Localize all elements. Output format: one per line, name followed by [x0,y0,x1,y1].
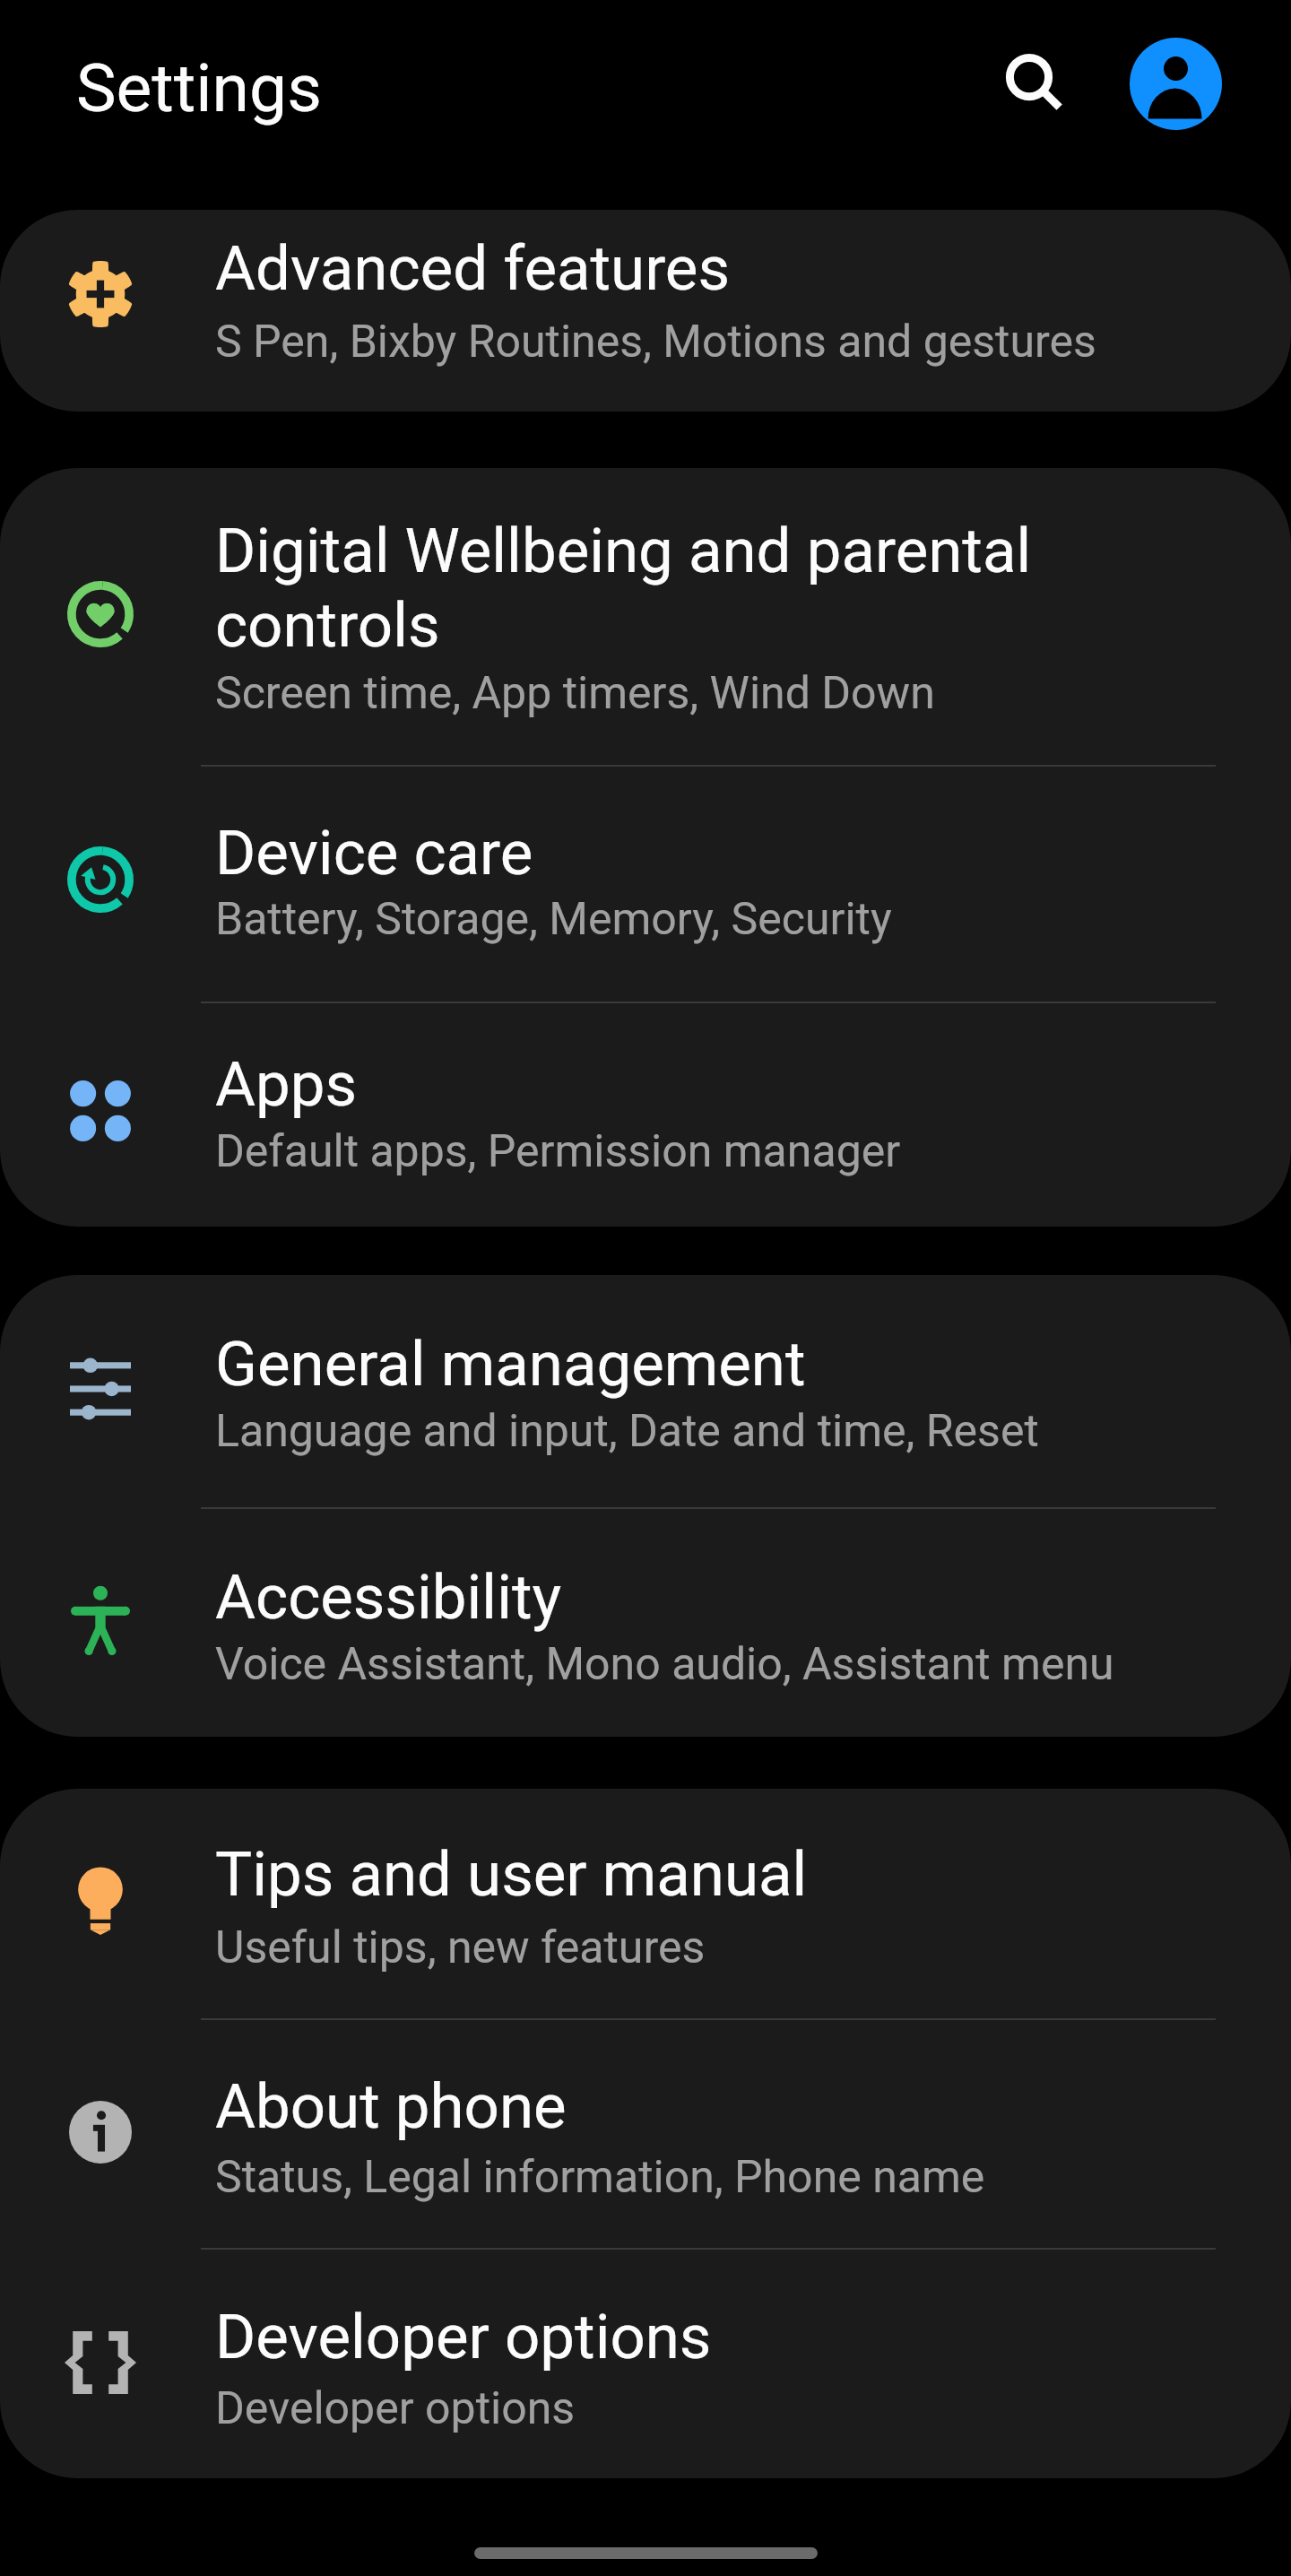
button[interactable]: Apps [0,1003,1291,1227]
staticText: About phone [215,2069,567,2143]
staticText: Useful tips, new features [215,1919,706,1974]
staticText: General management [215,1326,806,1401]
staticText: Developer options [215,2299,712,2373]
button[interactable]: Search [974,25,1085,136]
staticText: Advanced features [215,230,731,305]
button[interactable]: Accessibility [0,1509,1291,1737]
staticText: Language and input, Date and time, Reset [215,1402,1039,1458]
staticText: Apps [215,1046,358,1121]
staticText: Default apps, Permission manager [215,1123,901,1178]
button[interactable]: Tips and user manual [0,1789,1291,2018]
staticText: Device care [215,815,533,889]
button[interactable]: Advanced features [0,210,1291,412]
button[interactable]: About phone [0,2020,1291,2248]
staticText: S Pen, Bixby Routines, Motions and gestu… [215,313,1096,369]
button[interactable]: Digital Wellbeing and parental controls [0,468,1291,765]
staticText: Status, Legal information, Phone name [215,2148,985,2204]
button[interactable]: Device care [0,767,1291,1002]
staticText: Accessibility [215,1559,562,1634]
button[interactable]: Developer options [0,2250,1291,2478]
staticText: Settings [76,48,322,127]
staticText: Voice Assistant, Mono audio, Assistant m… [215,1635,1114,1691]
staticText: Tips and user manual [215,1836,808,1911]
staticText: Screen time, App timers, Wind Down [215,664,935,720]
staticText: Digital Wellbeing and parental controls [215,513,1165,662]
staticText: Developer options [215,2380,576,2435]
staticText: Battery, Storage, Memory, Security [215,890,892,946]
button[interactable]: General management [0,1275,1291,1507]
button[interactable]: Account [1120,28,1231,139]
